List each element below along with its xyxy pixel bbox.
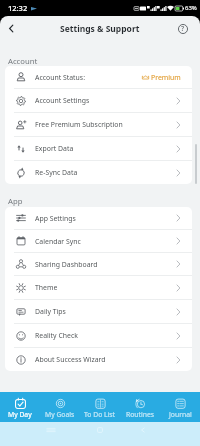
button[interactable]: Theme xyxy=(5,276,192,299)
button[interactable]: Routines xyxy=(120,392,160,422)
staticText: Daily Tips xyxy=(35,307,66,316)
button[interactable]: About Success Wizard xyxy=(5,348,192,371)
button[interactable]: Free Premium Subscription xyxy=(5,113,192,136)
staticText: Theme xyxy=(35,283,58,292)
staticText: Account Settings xyxy=(35,96,90,105)
staticText: Calendar Sync xyxy=(35,237,81,246)
staticText: About Success Wizard xyxy=(35,355,106,364)
staticText: Account Status: xyxy=(35,73,86,82)
button[interactable]: Back xyxy=(2,19,21,38)
staticText: Free Premium Subscription xyxy=(35,120,123,129)
button[interactable]: My Day xyxy=(0,392,40,422)
staticText: Settings & Support xyxy=(60,23,140,35)
staticText: App xyxy=(8,196,23,206)
button[interactable]: Account Status: xyxy=(5,66,192,88)
button[interactable]: To Do List xyxy=(80,392,120,422)
staticText: ? xyxy=(181,24,185,34)
staticText: Sharing Dashboard xyxy=(35,260,98,269)
staticText: Routines xyxy=(126,410,155,419)
button[interactable]: Re-Sync Data xyxy=(5,161,192,184)
staticText: App Settings xyxy=(35,214,76,223)
staticText: Export Data xyxy=(35,144,74,153)
button[interactable]: Back xyxy=(138,425,148,435)
button[interactable]: My Goals xyxy=(40,392,80,422)
staticText: 63% xyxy=(185,4,197,12)
button[interactable]: Sharing Dashboard xyxy=(5,253,192,275)
button[interactable]: Account Settings xyxy=(5,89,192,112)
button[interactable]: Calendar Sync xyxy=(5,230,192,252)
button[interactable]: App Settings xyxy=(5,207,192,229)
button[interactable]: Home xyxy=(95,425,105,435)
staticText: My Day xyxy=(8,410,32,419)
staticText: 12:32 xyxy=(8,3,28,13)
button[interactable]: Recent apps xyxy=(46,425,56,435)
staticText: Re-Sync Data xyxy=(35,168,78,177)
staticText: Premium xyxy=(151,73,181,82)
button[interactable]: Help xyxy=(176,22,190,36)
button[interactable]: Reality Check xyxy=(5,324,192,347)
button[interactable]: Journal xyxy=(160,392,200,422)
staticText: Journal xyxy=(169,410,192,419)
button[interactable]: Daily Tips xyxy=(5,300,192,323)
staticText: My Goals xyxy=(45,410,75,419)
button[interactable]: Export Data xyxy=(5,137,192,160)
staticText: Account xyxy=(8,56,38,66)
staticText: To Do List xyxy=(84,410,116,419)
staticText: Reality Check xyxy=(35,331,78,340)
